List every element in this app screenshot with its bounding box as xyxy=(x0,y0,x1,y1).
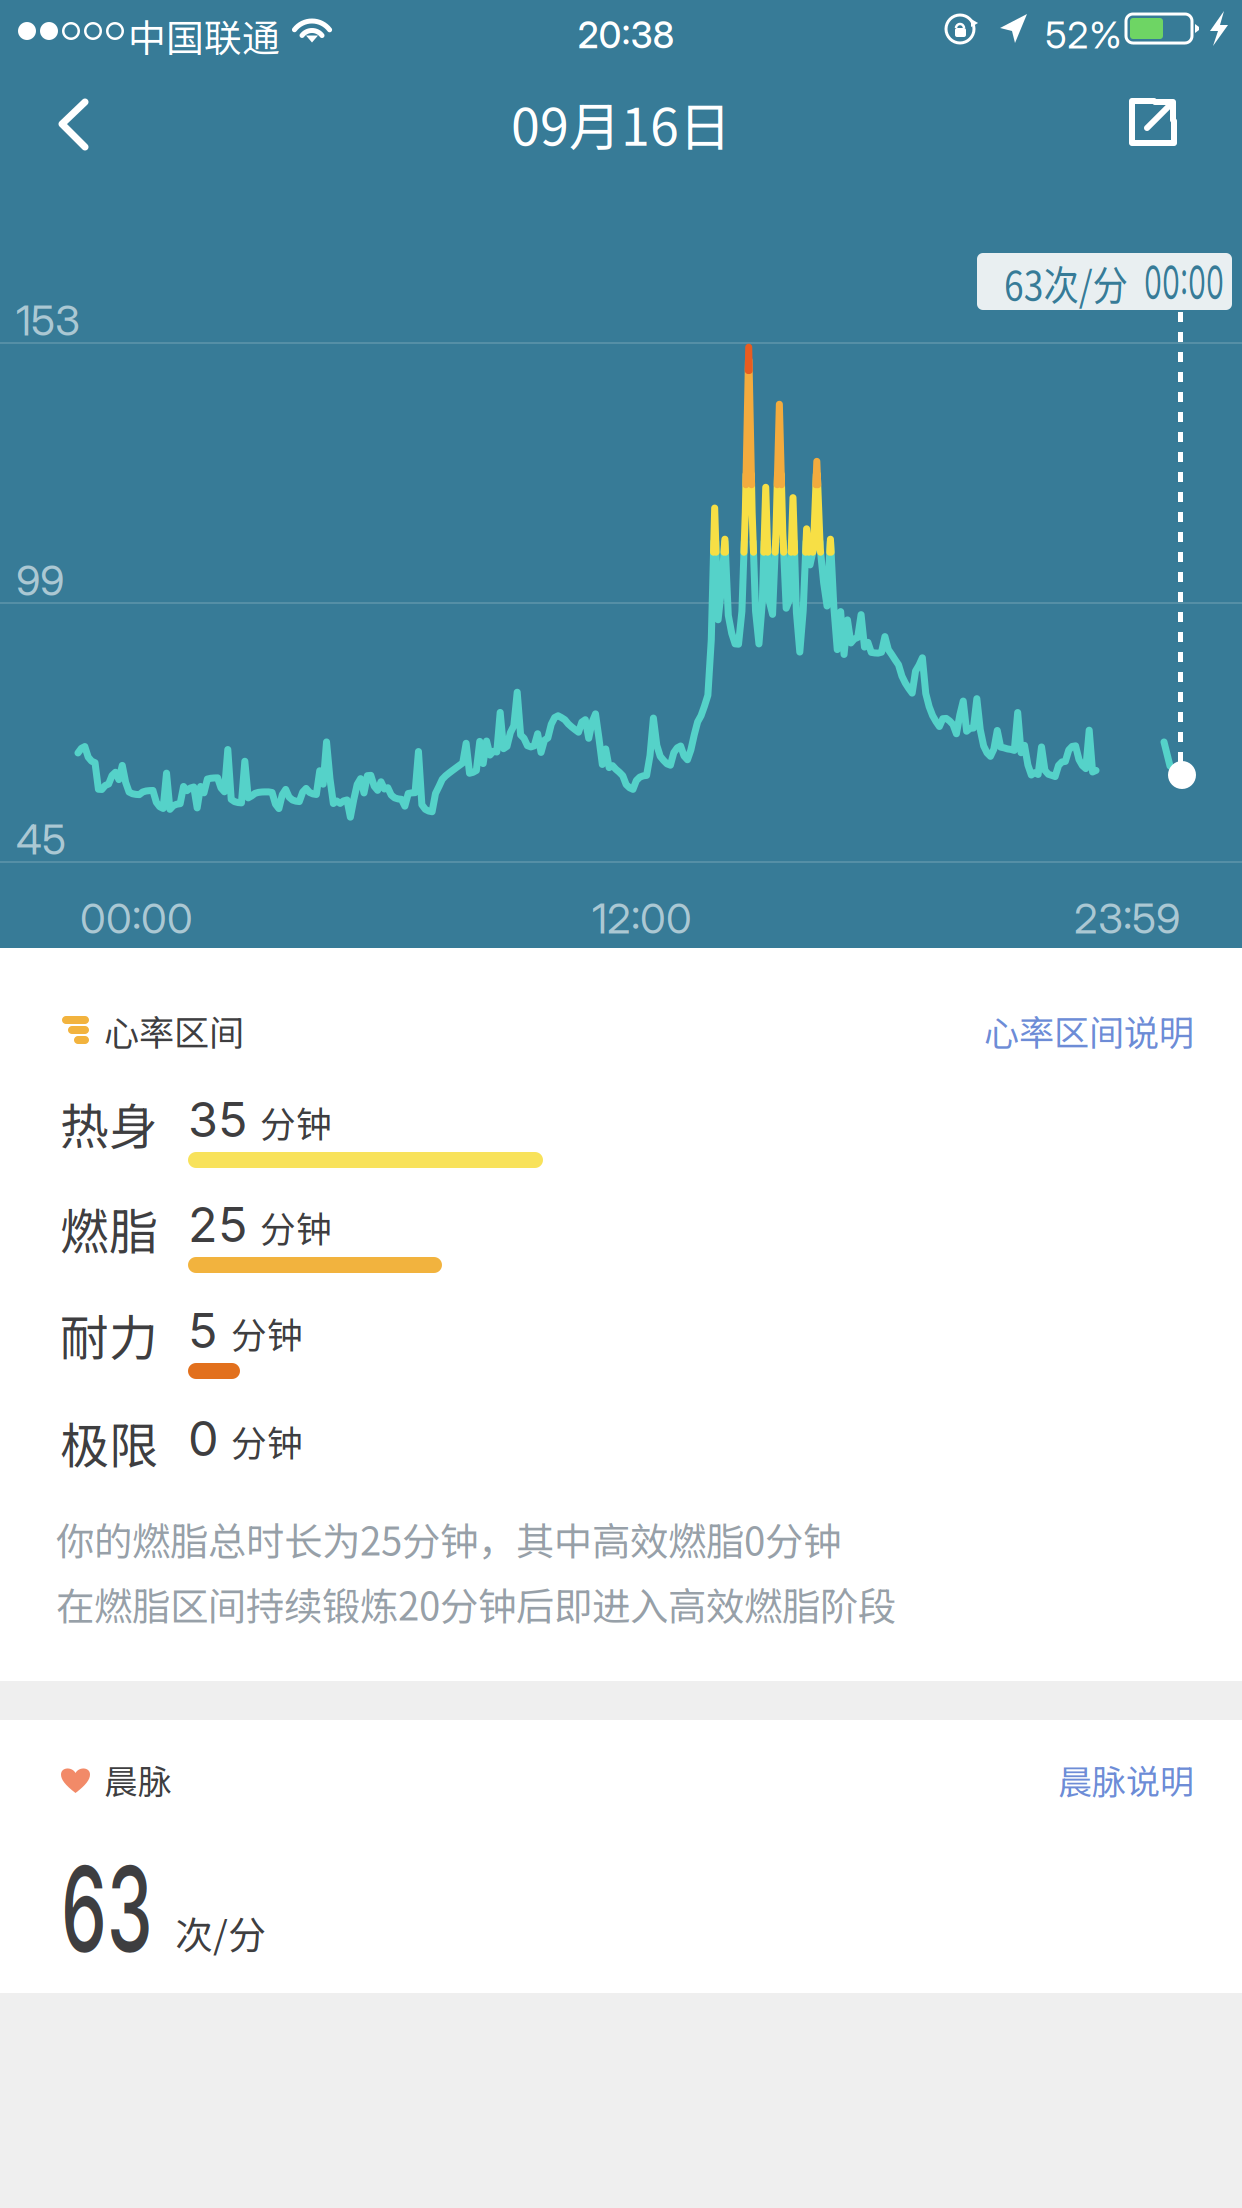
staticText: 35 xyxy=(188,1090,247,1149)
staticText: 心率区间说明 xyxy=(984,1005,1194,1056)
staticText: 极限 xyxy=(60,1407,158,1477)
staticText: 25 xyxy=(188,1195,247,1254)
button[interactable]: Share xyxy=(1100,62,1220,182)
staticText: 20:38 xyxy=(577,13,674,57)
staticText: 23:59 xyxy=(1074,893,1180,943)
staticText: 分钟 xyxy=(260,1201,332,1253)
staticText: 燃脂 xyxy=(60,1193,158,1263)
button[interactable]: 晨脉说明 xyxy=(0,1743,1194,1816)
staticText: 5 xyxy=(188,1301,217,1360)
staticText: 0 xyxy=(188,1409,219,1468)
staticText: 你的燃脂总时长为25分钟，其中高效燃脂0分钟 xyxy=(56,1511,841,1567)
staticText: 在燃脂区间持续锻炼20分钟后即进入高效燃脂阶段 xyxy=(56,1576,896,1632)
staticText: 153 xyxy=(16,295,80,345)
staticText: 耐力 xyxy=(60,1299,158,1369)
staticText: 中国联通 xyxy=(128,8,280,63)
staticText: 热身 xyxy=(60,1088,158,1158)
staticText: 心率区间 xyxy=(104,1005,244,1056)
staticText: 分钟 xyxy=(260,1096,332,1148)
staticText: 次/分 xyxy=(175,1905,266,1960)
staticText: 00:00 xyxy=(1144,255,1242,310)
staticText: 63次/分 xyxy=(1004,253,1148,312)
staticText: 09月16日 xyxy=(511,85,731,161)
staticText: 00:00 xyxy=(80,893,193,943)
staticText: 晨脉说明 xyxy=(1058,1755,1194,1804)
staticText: 分钟 xyxy=(231,1307,303,1359)
staticText: 52% xyxy=(1045,12,1122,58)
staticText: 45 xyxy=(16,814,66,864)
staticText: 分钟 xyxy=(231,1415,303,1467)
button[interactable]: Back xyxy=(0,62,116,182)
staticText: 99 xyxy=(16,555,64,605)
staticText: 63 xyxy=(61,1838,209,1980)
button[interactable]: 心率区间说明 xyxy=(0,993,1194,1068)
staticText: 12:00 xyxy=(592,893,692,943)
staticText: 晨脉 xyxy=(104,1755,172,1804)
